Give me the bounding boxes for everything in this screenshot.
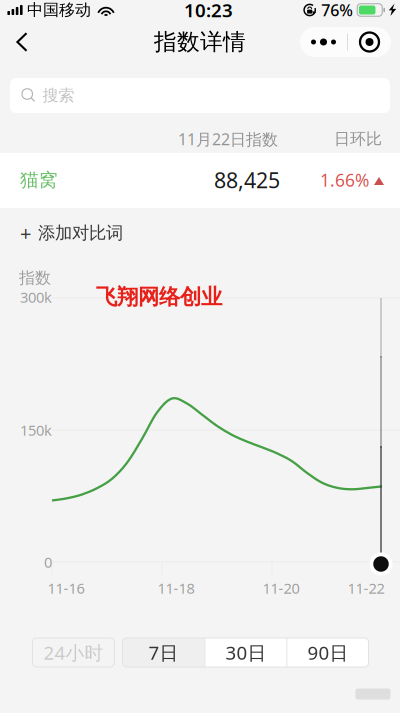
staticText: 11-22 [347,578,384,598]
staticText: 88,425 [214,166,280,194]
staticText: 11-20 [262,578,299,598]
staticText: 150k [20,420,52,440]
staticText: 10:23 [184,0,233,22]
staticText: 日环比 [334,129,382,149]
staticText: 指数详情 [154,28,246,56]
staticText: 30日 [225,640,266,665]
staticText: 76% [321,0,353,21]
staticText: 300k [20,287,52,307]
staticText: 猫窝 [20,168,58,191]
button[interactable]: More [300,27,347,57]
staticText: 中国移动 [27,0,91,20]
staticText: 7日 [148,640,178,665]
staticText: 90日 [307,640,348,665]
staticText: 11-16 [47,578,84,598]
staticText: 1.66% [320,168,369,191]
button[interactable]: Back [16,21,52,63]
button[interactable]: 30日 [205,638,286,667]
staticText: 0 [44,552,52,572]
staticText: 搜索 [42,86,74,105]
staticText: 指数 [19,268,51,288]
button[interactable]: 搜索 [10,78,390,113]
staticText: + [20,220,31,246]
button[interactable]: 90日 [287,638,368,667]
staticText: 添加对比词 [38,222,123,244]
staticText: 11月22日指数 [178,128,278,150]
staticText: 24小时 [43,640,103,665]
staticText: 飞翔网络创业 [96,284,222,310]
staticText: 11-18 [157,578,194,598]
button[interactable]: + [0,211,400,255]
button[interactable]: Close [348,27,391,57]
button[interactable]: 7日 [122,638,204,667]
button[interactable]: 24小时 [32,638,114,667]
